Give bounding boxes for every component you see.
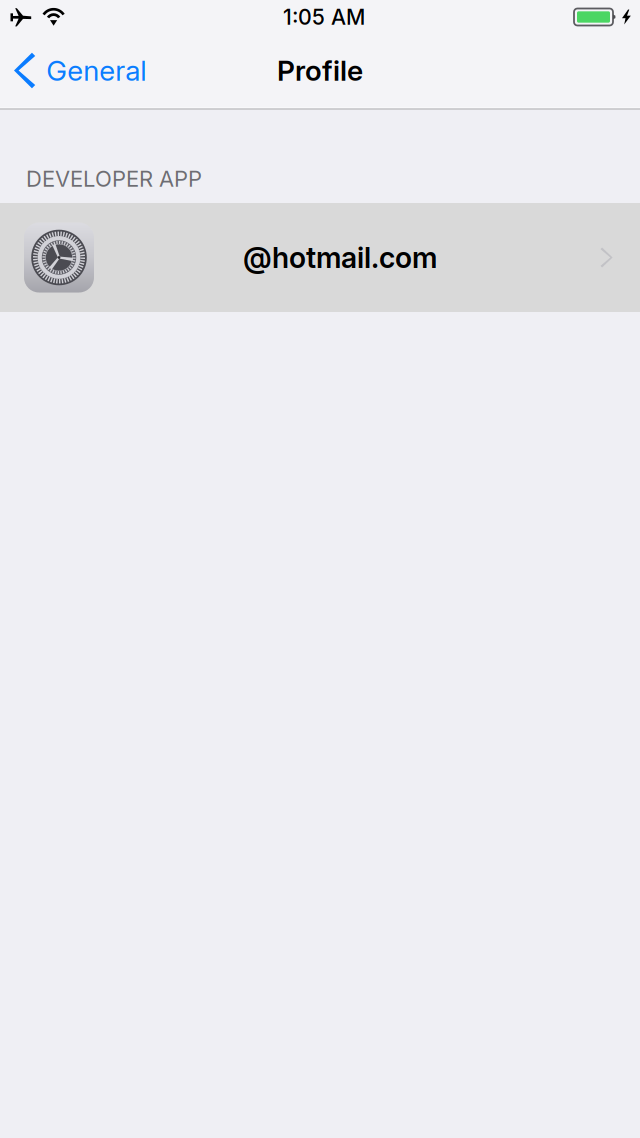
staticText: Profile	[277, 54, 363, 87]
staticText: General	[46, 54, 146, 87]
button[interactable]: @hotmail.com	[0, 203, 640, 312]
staticText: DEVELOPER APP	[26, 165, 202, 192]
staticText: @hotmail.com	[243, 240, 437, 275]
staticText: 1:05 AM	[283, 4, 365, 30]
button[interactable]: General	[0, 33, 162, 107]
